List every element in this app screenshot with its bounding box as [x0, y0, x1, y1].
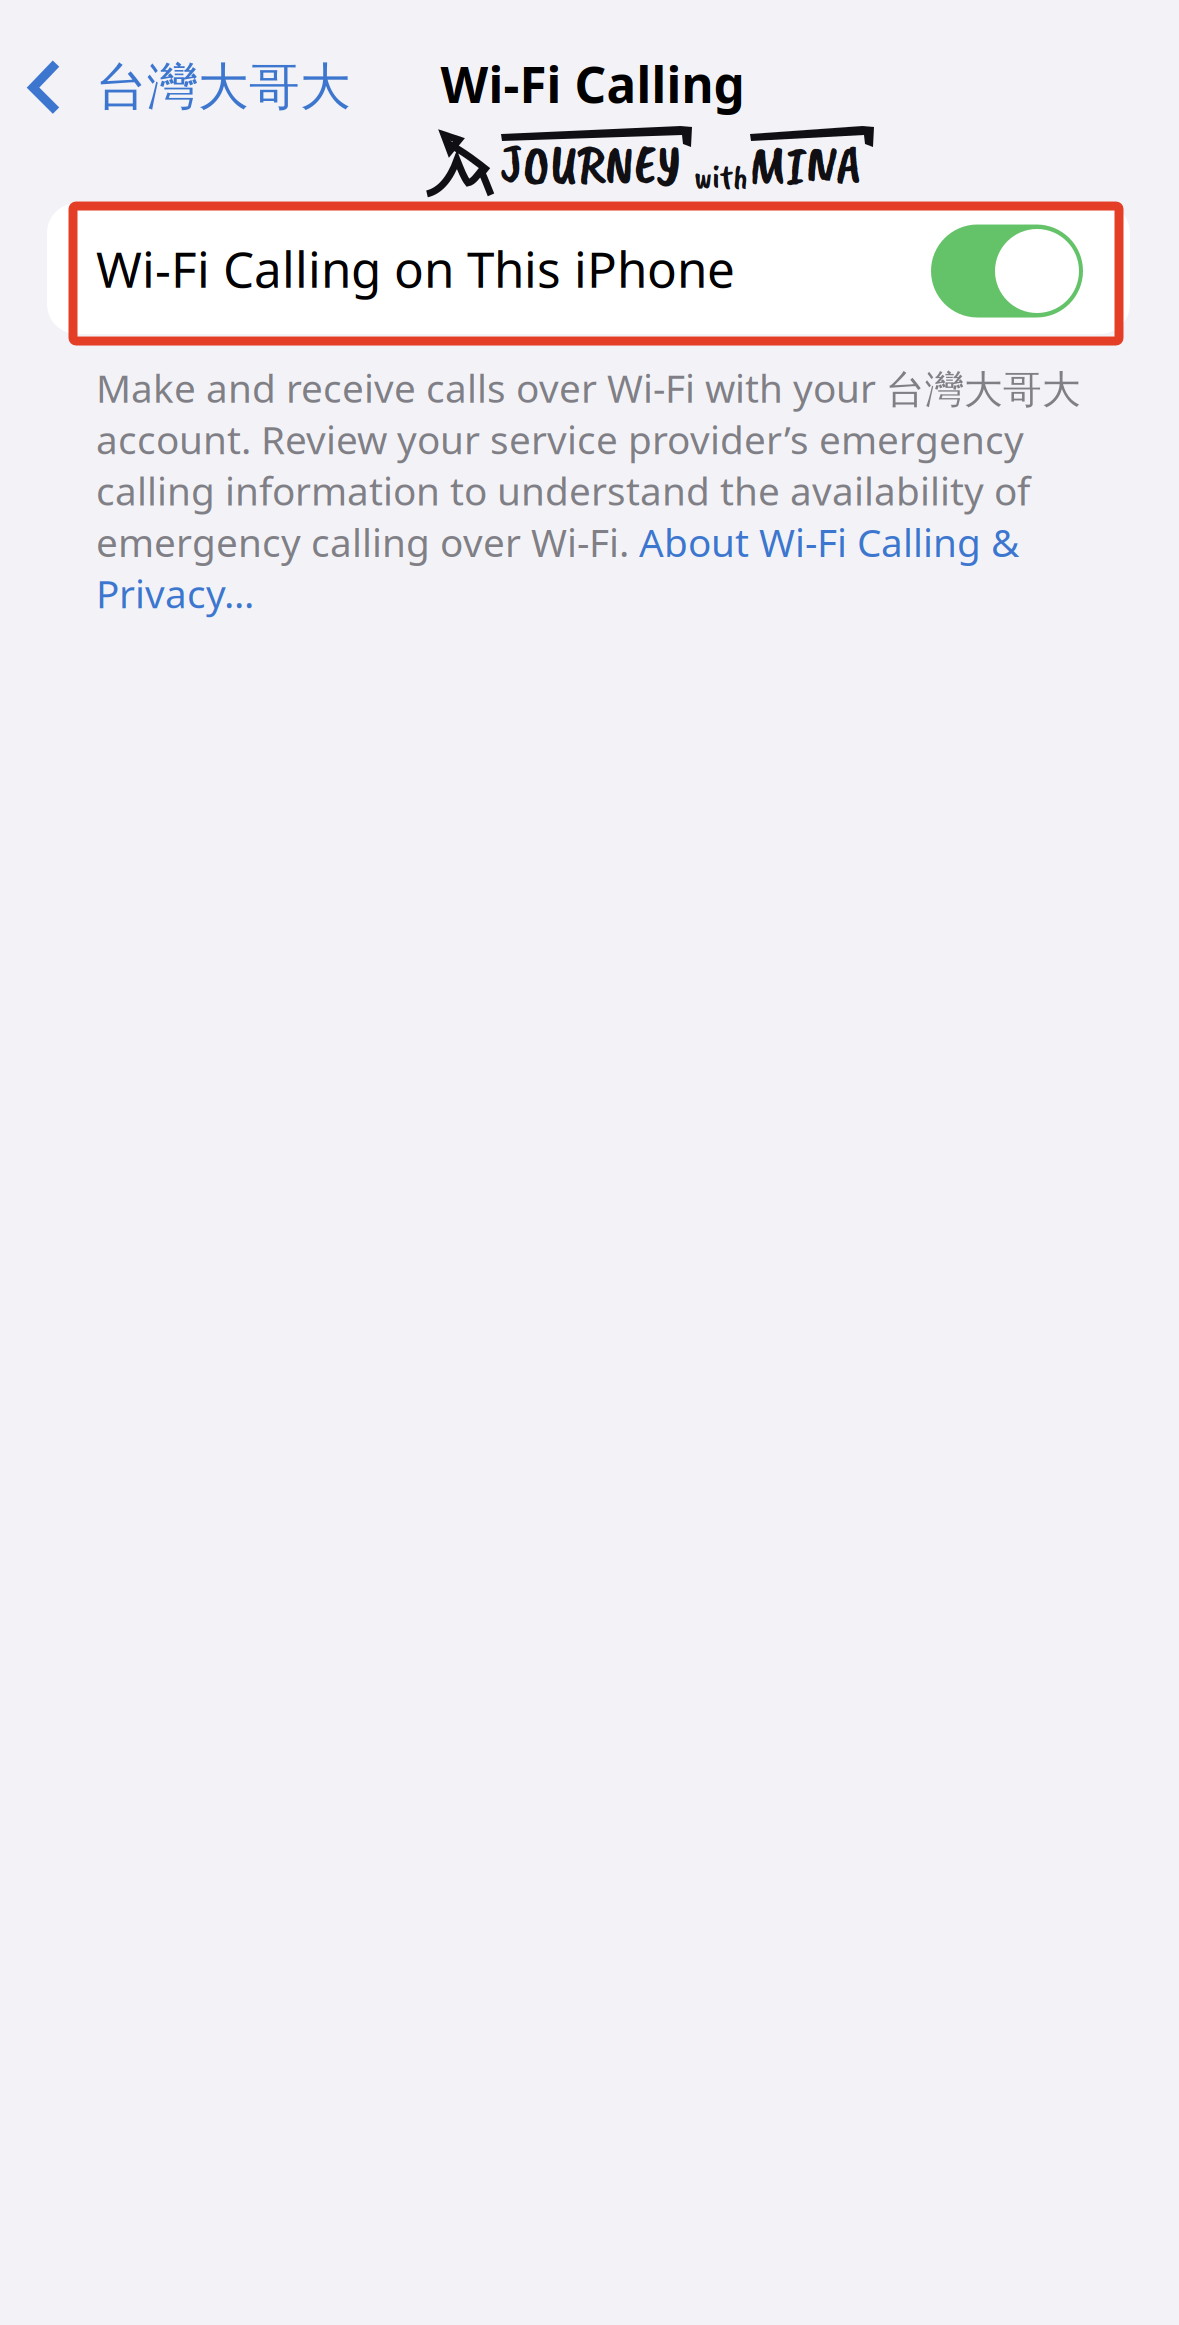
staticText: MINA	[749, 130, 862, 199]
staticText: Wi-Fi Calling	[440, 51, 744, 116]
staticText: JOURNEY	[500, 130, 681, 199]
staticText: Make and receive calls over Wi-Fi with y…	[96, 362, 1081, 619]
staticText: 台灣大哥大	[96, 56, 351, 118]
staticText: Wi-Fi Calling on This iPhone	[96, 236, 735, 301]
button[interactable]: Wi-Fi Calling on This iPhone	[47, 203, 1130, 334]
staticText: with	[694, 155, 748, 199]
button[interactable]: 台灣大哥大	[0, 52, 351, 122]
